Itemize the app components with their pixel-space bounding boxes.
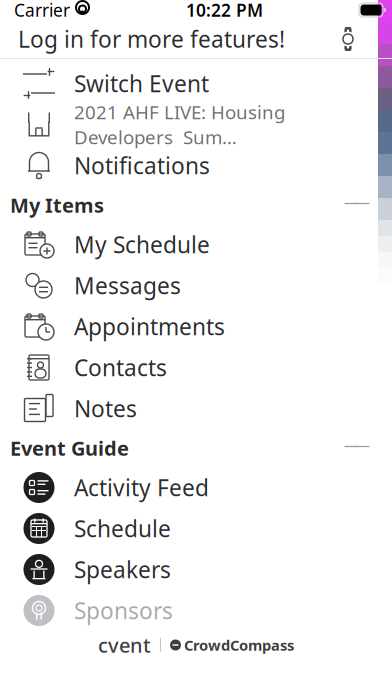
- button[interactable]: 2021 AHF LIVE: Housing Developers Sum…: [0, 104, 392, 145]
- staticText: Schedule: [74, 513, 171, 543]
- button[interactable]: Event Guide: [0, 429, 392, 467]
- button[interactable]: Settings: [326, 20, 370, 58]
- staticText: 10:22 PM: [186, 0, 263, 21]
- button[interactable]: My Schedule: [0, 224, 392, 265]
- button[interactable]: Notes: [0, 388, 392, 429]
- button[interactable]: Log in for more features!: [0, 15, 285, 63]
- staticText: Event Guide: [10, 435, 129, 461]
- staticText: Appointments: [74, 311, 225, 341]
- staticText: CrowdCompass: [184, 635, 294, 655]
- button[interactable]: Switch Event: [0, 63, 392, 104]
- staticText: My Items: [10, 192, 104, 218]
- staticText: Switch Event: [74, 68, 209, 98]
- staticText: Notifications: [74, 150, 210, 180]
- staticText: Contacts: [74, 352, 167, 382]
- button[interactable]: Schedule: [0, 508, 392, 549]
- button[interactable]: Messages: [0, 265, 392, 306]
- button[interactable]: Appointments: [0, 306, 392, 347]
- staticText: cvent: [98, 632, 151, 658]
- staticText: Log in for more features!: [18, 24, 285, 54]
- button[interactable]: Notifications: [0, 145, 392, 186]
- staticText: Sponsors: [74, 595, 173, 625]
- button[interactable]: Sponsors: [0, 590, 392, 631]
- button[interactable]: Activity Feed: [0, 467, 392, 508]
- staticText: Messages: [74, 270, 181, 300]
- button[interactable]: Speakers: [0, 549, 392, 590]
- staticText: 2021 AHF LIVE: Housing Developers Sum…: [74, 100, 285, 149]
- button[interactable]: Contacts: [0, 347, 392, 388]
- staticText: Carrier: [14, 0, 70, 21]
- staticText: Speakers: [74, 554, 171, 584]
- staticText: My Schedule: [74, 229, 210, 259]
- staticText: Activity Feed: [74, 472, 209, 502]
- button[interactable]: My Items: [0, 186, 392, 224]
- staticText: Notes: [74, 393, 137, 423]
